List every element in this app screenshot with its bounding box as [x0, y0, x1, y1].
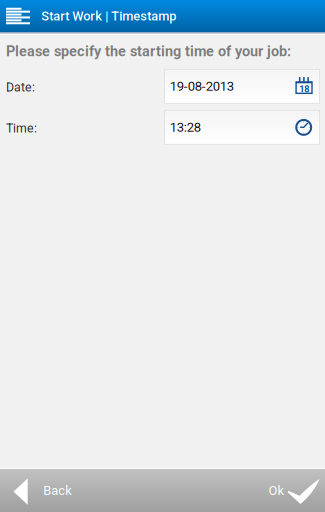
- button[interactable]: Ok: [258, 469, 325, 512]
- staticText: Ok: [268, 483, 283, 498]
- staticText: 13:28: [170, 120, 201, 135]
- staticText: Start Work | Timestamp: [41, 8, 176, 23]
- staticText: Please specify the starting time of your…: [6, 43, 291, 60]
- staticText: Date:: [6, 80, 35, 95]
- button[interactable]: Back: [0, 469, 81, 512]
- staticText: Time:: [6, 121, 37, 136]
- staticText: 18: [299, 84, 309, 94]
- staticText: 19-08-2013: [170, 79, 234, 94]
- button[interactable]: Menu: [0, 0, 41, 32]
- staticText: Back: [43, 483, 71, 498]
- button[interactable]: 19-08-2013: [164, 69, 320, 104]
- button[interactable]: 13:28: [164, 110, 320, 145]
